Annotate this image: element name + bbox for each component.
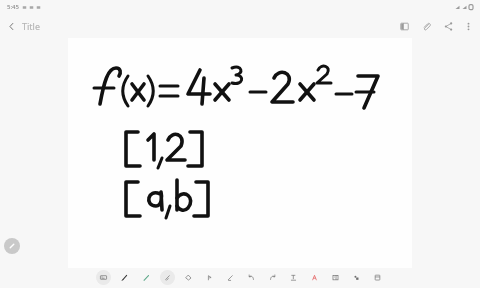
staticText: Title	[22, 20, 40, 32]
button[interactable]: Tool 3	[139, 270, 154, 285]
button[interactable]: Tool 2	[117, 270, 132, 285]
button[interactable]: More options	[459, 17, 477, 35]
button[interactable]: Tool 13	[349, 270, 364, 285]
button[interactable]: Tool 1	[96, 270, 111, 285]
button[interactable]: Edit	[4, 238, 20, 254]
button[interactable]: Tool 6	[202, 270, 217, 285]
button[interactable]: Tool 11	[307, 270, 322, 285]
button[interactable]: Attach	[415, 15, 437, 37]
button[interactable]: Back	[0, 15, 22, 37]
button[interactable]: Tool 9	[265, 270, 280, 285]
button[interactable]: Share	[437, 15, 459, 37]
button[interactable]: Tool 4	[160, 270, 175, 285]
staticText: 5:45	[7, 3, 19, 11]
button[interactable]: Tool 12	[328, 270, 343, 285]
button[interactable]: Tool 8	[244, 270, 259, 285]
button[interactable]: Tool 14	[370, 270, 385, 285]
button[interactable]: Tool 5	[181, 270, 196, 285]
button[interactable]: Tool 10	[286, 270, 301, 285]
button[interactable]: View mode	[393, 15, 415, 37]
button[interactable]: Tool 7	[223, 270, 238, 285]
